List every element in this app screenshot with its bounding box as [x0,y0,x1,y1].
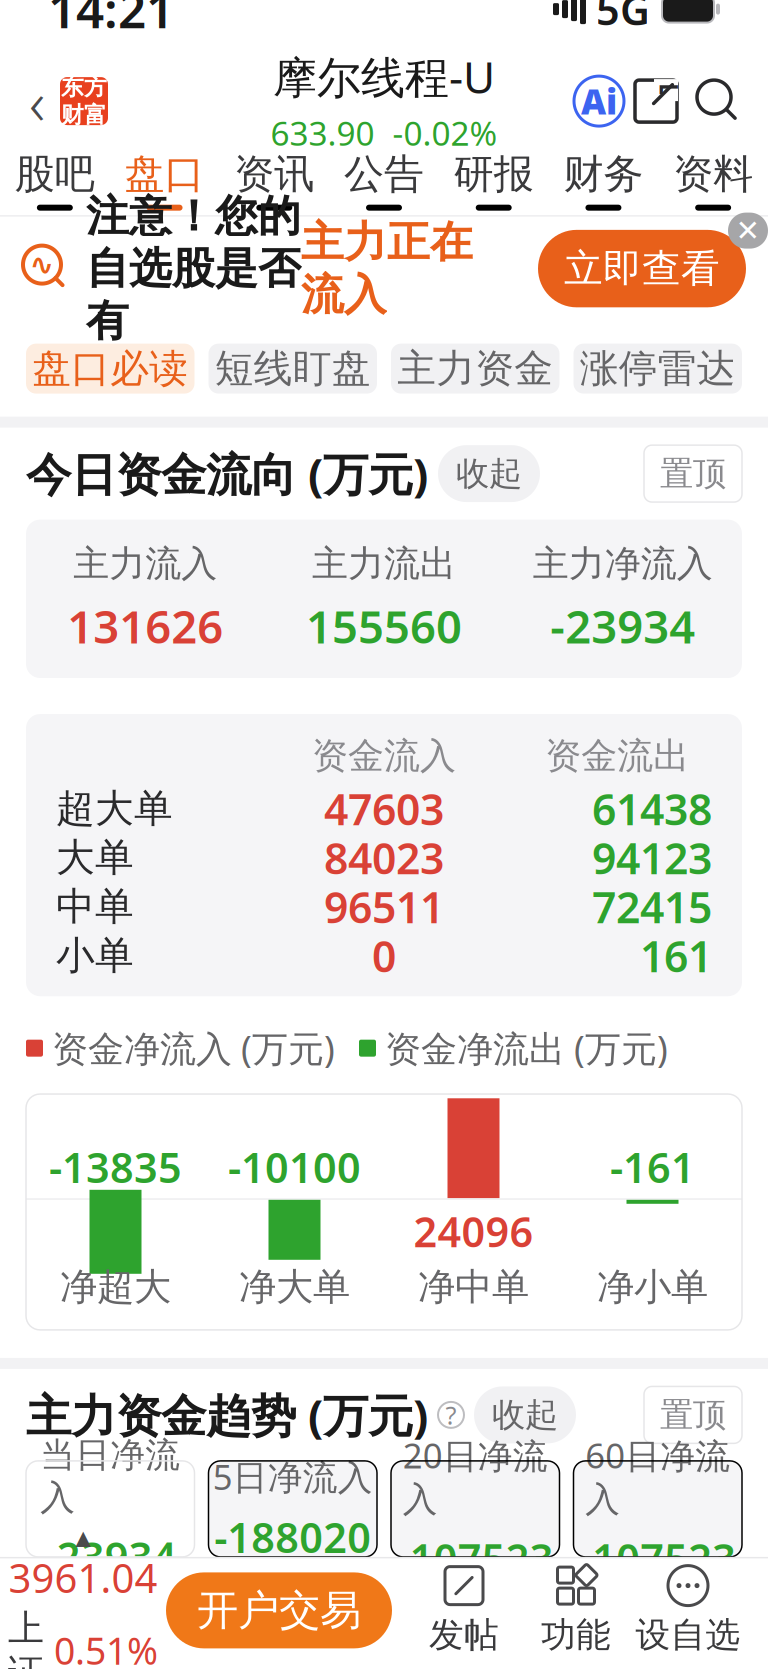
button[interactable]: 收起 [474,1386,576,1443]
staticText: ✕ [735,214,760,247]
staticText: 5G [596,0,650,37]
staticText: 96511 [324,878,444,935]
button[interactable]: 发帖 [408,1565,520,1656]
button[interactable]: 研报 [439,145,549,215]
button[interactable]: 盘口 [110,145,219,215]
button[interactable]: ∿ [0,217,768,321]
button[interactable]: 盘口必读 [26,344,194,394]
staticText: 633.90 -0.02% [270,111,497,155]
staticText: 3961.04 [8,1551,157,1604]
staticText: 盘口 [125,149,205,199]
button[interactable]: 主力资金 [391,344,559,394]
button[interactable]: 开户交易 [166,1572,392,1648]
staticText: 注意！您的自选股是否有 [86,190,301,347]
staticText: 盘口必读 [32,345,188,392]
staticText: 72415 [592,878,712,935]
staticText: -161 [610,1139,695,1194]
staticText: 置顶 [660,453,726,494]
staticText: 超大单 [56,785,173,832]
button[interactable]: 60日净流入 [573,1461,742,1557]
staticText: 资金净流出 (万元) [385,1024,668,1072]
button[interactable]: 设自选 [632,1565,744,1656]
staticText: 涨停雷达 [580,345,736,392]
staticText: 5日净流入 [213,1453,373,1499]
staticText: 主力资金 [397,345,553,392]
button[interactable]: Close ad [728,213,768,249]
staticText: 净超大 [60,1264,171,1310]
button[interactable]: East Money home [60,77,108,125]
staticText: 中单 [56,883,134,930]
button[interactable]: 短线盯盘 [208,344,377,394]
staticText: 资金流入 [312,734,456,778]
staticText: 资料 [673,149,753,199]
staticText: 61438 [592,780,712,837]
button[interactable]: 当日净流入 [26,1461,194,1557]
staticText: 资金净流入 (万元) [52,1024,335,1072]
staticText: -13835 [49,1139,182,1194]
button[interactable]: Share [624,69,688,133]
button[interactable]: 置顶 [644,445,742,502]
button[interactable]: 公告 [329,145,439,215]
staticText: 今日资金流向 (万元) [26,443,428,504]
staticText: 主力资金趋势 (万元) [26,1385,428,1445]
staticText: -188020 [214,1509,371,1564]
button[interactable]: 收起 [438,445,540,502]
button[interactable]: 功能 [520,1565,632,1656]
staticText: 摩尔线程-U [273,47,495,106]
staticText: -23934 [550,596,695,656]
staticText: 净大单 [239,1264,350,1310]
staticText: 主力流入 [73,542,217,586]
staticText: 主力净流入 [533,542,713,586]
staticText: 131626 [67,596,223,656]
staticText: 47603 [324,780,444,837]
staticText: ▲ [75,1526,90,1549]
staticText: -23934 [44,1529,177,1584]
staticText: 公告 [344,149,424,199]
staticText: -10100 [228,1139,361,1194]
staticText: -107523 [397,1531,554,1586]
staticText: 155560 [306,596,462,656]
staticText: ‹ [29,60,45,142]
button[interactable]: 5日净流入 [208,1461,377,1557]
staticText: 当日净流入 [40,1434,180,1519]
staticText: Ai [581,78,617,124]
button[interactable]: ▲ [8,1526,158,1669]
button[interactable]: 资料 [658,145,768,215]
staticText: 0 [372,927,396,984]
staticText: 资金流出 [545,734,689,778]
staticText: 资讯 [234,149,314,199]
staticText: 功能 [541,1614,611,1656]
staticText: 主力流出 [312,542,456,586]
staticText: 24096 [413,1204,533,1259]
staticText: 净小单 [597,1264,708,1310]
staticText: 发帖 [429,1614,499,1656]
staticText: 净中单 [418,1264,529,1310]
button[interactable]: Search [688,69,748,133]
staticText: 84023 [324,829,444,886]
staticText: 东方 [61,73,107,101]
staticText: 股吧 [15,149,95,199]
button[interactable]: Back [14,68,60,134]
staticText: 置顶 [660,1394,726,1435]
staticText: 上证 [8,1606,44,1669]
staticText: -107523 [579,1531,736,1586]
staticText: 财富 [61,101,107,129]
staticText: 0.51% [54,1625,158,1669]
staticText: 20日净流入 [403,1432,548,1521]
staticText: 大单 [56,834,134,881]
button[interactable]: AI assistant [574,76,624,126]
staticText: 收起 [456,453,522,494]
button[interactable]: 20日净流入 [391,1461,559,1557]
staticText: 设自选 [635,1614,740,1656]
button[interactable]: 股吧 [0,145,110,215]
staticText: ∿ [29,248,54,281]
button[interactable]: 财务 [549,145,658,215]
staticText: ? [445,1398,456,1432]
button[interactable]: 置顶 [644,1386,742,1443]
button[interactable]: 资讯 [219,145,329,215]
staticText: 开户交易 [197,1585,361,1636]
staticText: 研报 [454,149,534,199]
staticText: 立即查看 [564,245,720,292]
staticText: 161 [640,927,712,984]
button[interactable]: 涨停雷达 [573,344,742,394]
